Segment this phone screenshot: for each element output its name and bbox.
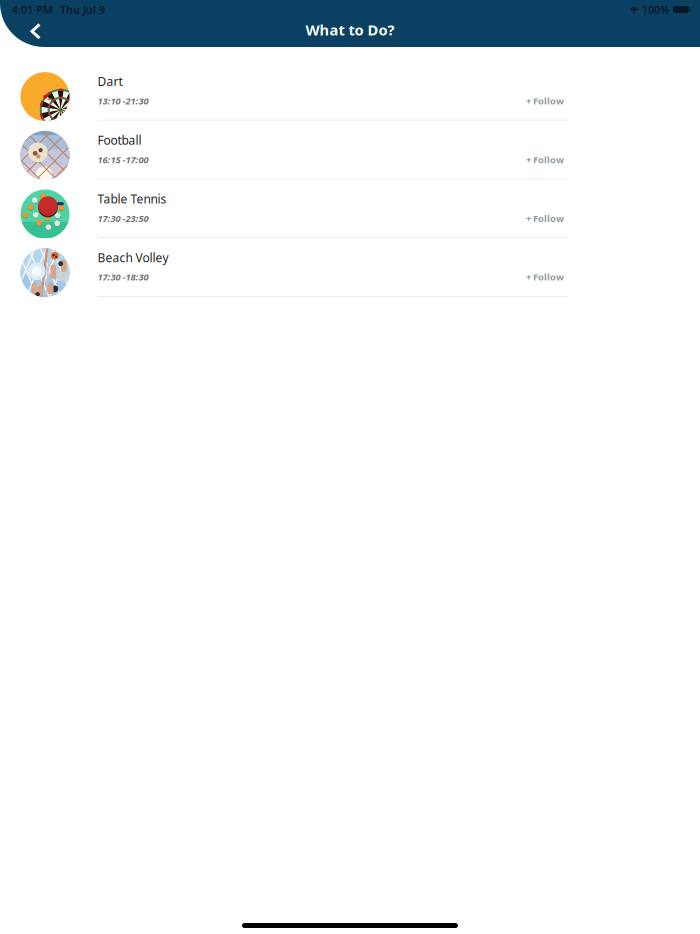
staticText: 17:30 -23:50 xyxy=(97,212,148,224)
staticText: 17:30 -18:30 xyxy=(97,271,148,283)
staticText: 100% xyxy=(642,2,669,17)
button[interactable]: Table Tennis xyxy=(0,179,700,238)
staticText: What to Do? xyxy=(305,20,394,39)
staticText: + Follow xyxy=(526,271,564,283)
staticText: Table Tennis xyxy=(97,191,166,207)
button[interactable]: Back xyxy=(19,16,53,47)
staticText: Beach Volley xyxy=(97,250,168,265)
staticText: 16:15 -17:00 xyxy=(97,153,148,166)
staticText: + Follow xyxy=(526,212,564,224)
button[interactable]: Beach Volley xyxy=(0,238,700,297)
staticText: + Follow xyxy=(526,153,564,166)
staticText: 13:10 -21:30 xyxy=(97,95,148,107)
staticText: + Follow xyxy=(526,95,564,107)
staticText: Football xyxy=(97,132,141,148)
staticText: Dart xyxy=(97,73,122,89)
button[interactable]: Dart xyxy=(0,62,700,121)
staticText: 4:01 PM xyxy=(12,2,53,17)
staticText: Thu Jul 9 xyxy=(60,2,105,17)
button[interactable]: Football xyxy=(0,121,700,179)
